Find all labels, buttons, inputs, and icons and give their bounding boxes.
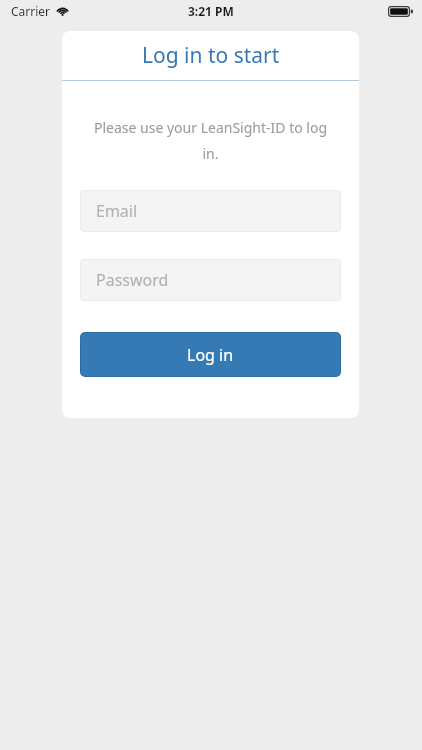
staticText: 3:21 PM <box>188 3 234 19</box>
staticText: Log in <box>187 344 234 366</box>
other: Wi-Fi signal <box>56 6 69 16</box>
button[interactable]: Email <box>81 191 340 231</box>
other: Battery full <box>388 6 413 17</box>
staticText: Password <box>96 269 169 291</box>
button[interactable]: Password <box>81 260 340 300</box>
button[interactable]: Log in <box>81 333 340 376</box>
staticText: Email <box>96 200 138 222</box>
staticText: Please use your LeanSight-ID to log in. <box>92 118 329 164</box>
staticText: Log in to start <box>142 41 280 70</box>
staticText: Carrier <box>11 3 51 19</box>
